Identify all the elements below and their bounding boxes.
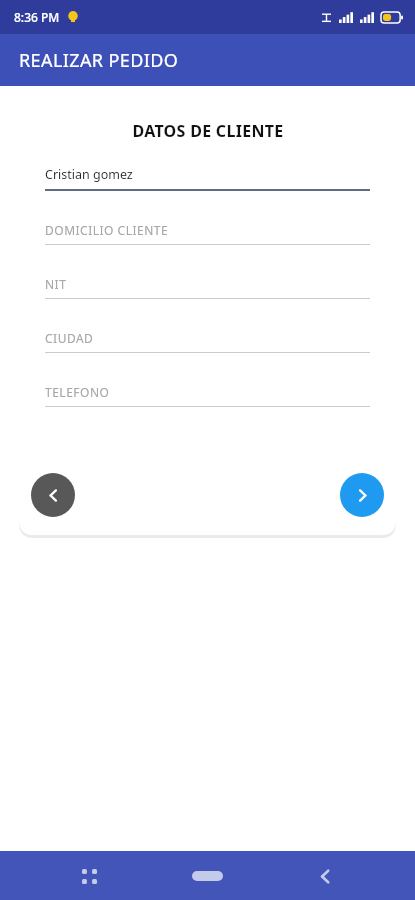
staticText: 8:36 PM	[14, 9, 60, 25]
staticText: CIUDAD	[45, 330, 94, 346]
staticText: DOMICILIO CLIENTE	[45, 222, 169, 238]
staticText: DATOS DE CLIENTE	[132, 120, 284, 142]
button[interactable]: Next	[340, 473, 384, 517]
button[interactable]: DOMICILIO CLIENTE	[45, 222, 370, 245]
staticText: NIT	[45, 276, 67, 292]
button[interactable]: CIUDAD	[45, 330, 370, 353]
button[interactable]: Recent apps	[67, 854, 111, 898]
button[interactable]: Back	[303, 854, 347, 898]
button[interactable]: NIT	[45, 276, 370, 299]
button[interactable]: TELEFONO	[45, 384, 370, 407]
button[interactable]: Previous	[31, 473, 75, 517]
button[interactable]: Home	[179, 854, 235, 898]
button[interactable]: Cristian gomez	[45, 166, 370, 191]
staticText: Cristian gomez	[45, 166, 133, 183]
staticText: TELEFONO	[45, 384, 110, 400]
staticText: REALIZAR PEDIDO	[19, 48, 179, 73]
